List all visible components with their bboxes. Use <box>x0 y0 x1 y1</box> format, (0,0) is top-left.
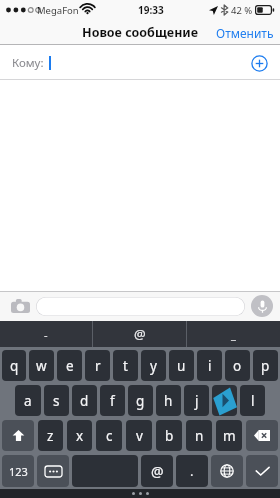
staticText: z <box>47 427 54 445</box>
staticText: s <box>53 392 60 410</box>
button[interactable]: Done <box>246 455 278 487</box>
button[interactable]: t <box>113 350 138 381</box>
button[interactable]: y <box>141 350 166 381</box>
button[interactable]: Backspace <box>246 420 278 451</box>
staticText: p <box>261 357 270 375</box>
staticText: d <box>80 392 89 410</box>
button[interactable]: i <box>197 350 222 381</box>
button[interactable]: c <box>96 420 122 451</box>
button[interactable]: g <box>128 385 153 416</box>
staticText: 42 % <box>231 4 253 17</box>
button[interactable]: Camera <box>7 295 33 317</box>
button[interactable]: j <box>184 385 209 416</box>
staticText: x <box>76 427 84 445</box>
button[interactable] <box>36 297 245 316</box>
staticText: w <box>36 357 47 375</box>
button[interactable]: Change language <box>211 455 243 487</box>
staticText: t <box>123 357 128 375</box>
button[interactable]: w <box>29 350 54 381</box>
button[interactable]: k <box>212 385 237 416</box>
button[interactable]: Space <box>72 455 138 487</box>
staticText: Отменить <box>216 25 274 41</box>
staticText: a <box>24 392 32 410</box>
button[interactable]: Add contact <box>247 51 271 75</box>
staticText: l <box>251 392 255 410</box>
button[interactable]: @ <box>141 455 173 487</box>
staticText: Кому: <box>12 55 44 71</box>
button[interactable]: Shift <box>2 420 34 451</box>
staticText: h <box>164 392 173 410</box>
button[interactable]: Voice message <box>251 295 273 317</box>
button[interactable]: v <box>126 420 152 451</box>
staticText: @ <box>151 462 164 481</box>
staticText: e <box>66 357 74 375</box>
button[interactable]: Отменить <box>210 20 280 45</box>
button[interactable]: . <box>176 455 208 487</box>
staticText: u <box>177 357 186 375</box>
staticText: j <box>195 392 199 410</box>
button[interactable]: u <box>169 350 194 381</box>
staticText: Новое сообщение <box>82 24 199 41</box>
staticText: i <box>208 357 212 375</box>
button[interactable]: - <box>0 321 92 347</box>
staticText: 19:33 <box>138 3 164 17</box>
button[interactable]: _ <box>187 321 280 347</box>
staticText: - <box>44 327 48 342</box>
staticText: b <box>165 427 174 445</box>
button[interactable]: o <box>225 350 250 381</box>
button[interactable]: z <box>38 420 63 451</box>
staticText: n <box>195 427 204 445</box>
staticText: _ <box>231 327 236 342</box>
staticText: r <box>95 357 101 375</box>
staticText: v <box>136 427 143 445</box>
staticText: k <box>221 392 229 410</box>
button[interactable]: n <box>186 420 212 451</box>
staticText: o <box>233 357 242 375</box>
button[interactable]: 123 <box>2 455 34 487</box>
button[interactable]: d <box>72 385 97 416</box>
button[interactable]: l <box>240 385 265 416</box>
staticText: y <box>150 357 157 375</box>
button[interactable]: e <box>57 350 82 381</box>
button[interactable]: b <box>156 420 182 451</box>
button[interactable]: Emoji <box>37 455 69 487</box>
button[interactable]: m <box>216 420 242 451</box>
staticText: q <box>10 357 19 375</box>
staticText: . <box>190 462 194 480</box>
button[interactable]: p <box>253 350 278 381</box>
button[interactable]: q <box>2 350 26 381</box>
button[interactable]: r <box>85 350 110 381</box>
staticText: @ <box>134 325 146 343</box>
button[interactable]: a <box>15 385 41 416</box>
staticText: f <box>110 392 115 410</box>
button[interactable]: h <box>156 385 181 416</box>
button[interactable]: Кому: <box>0 45 280 80</box>
button[interactable]: f <box>100 385 125 416</box>
button[interactable]: s <box>44 385 69 416</box>
staticText: g <box>136 392 145 410</box>
button[interactable]: @ <box>93 321 186 347</box>
button[interactable]: x <box>67 420 92 451</box>
staticText: 123 <box>9 464 28 479</box>
staticText: m <box>223 427 236 445</box>
staticText: MegaFon <box>37 4 79 17</box>
staticText: c <box>106 427 113 445</box>
